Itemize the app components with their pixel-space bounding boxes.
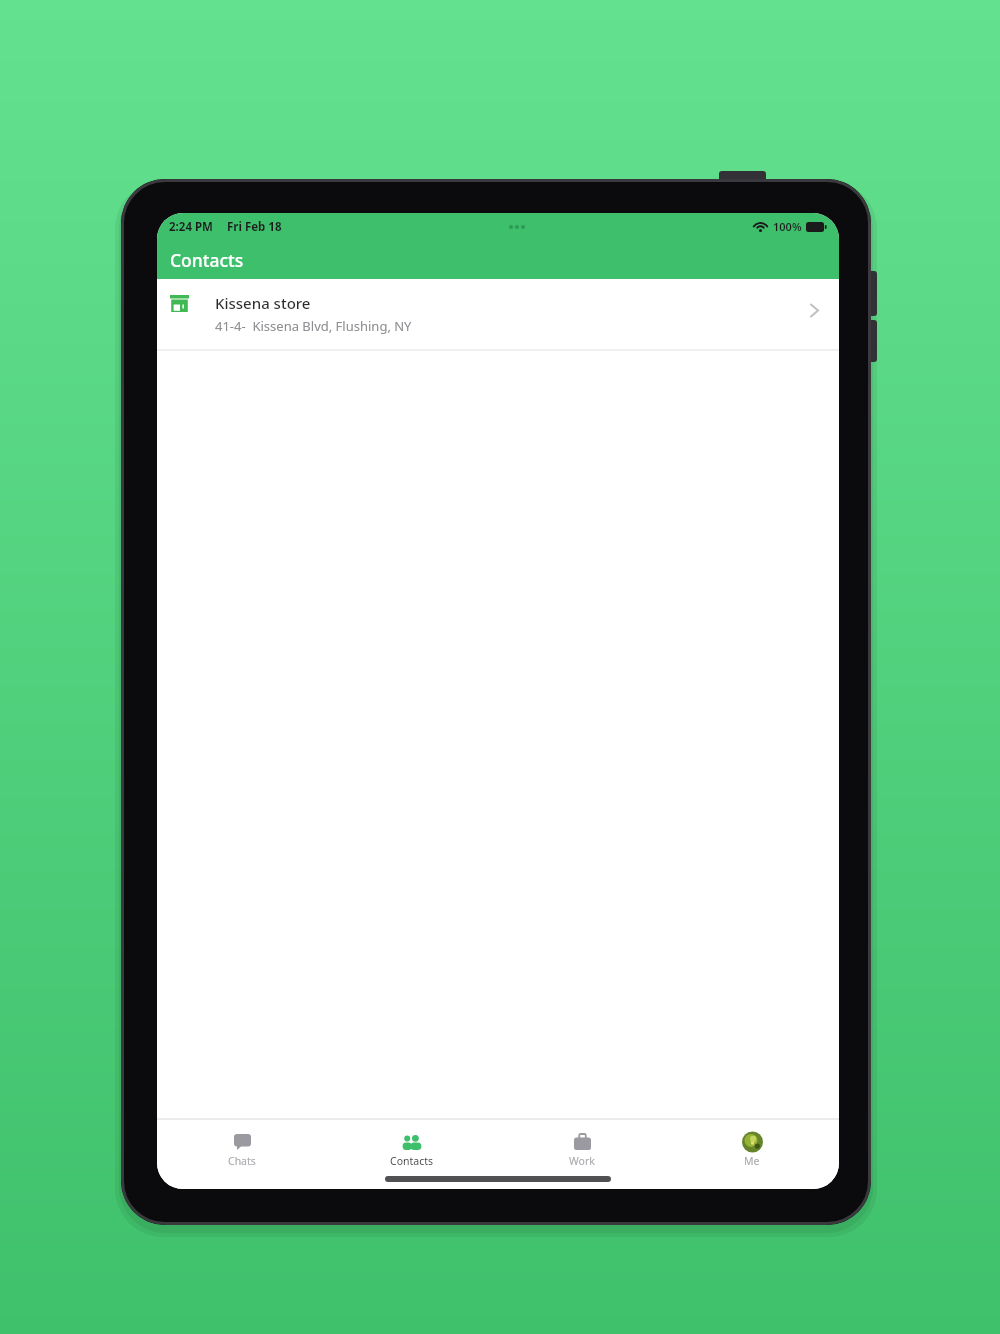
staticText: Me — [744, 1154, 760, 1168]
staticText: 2:24 PM — [169, 219, 213, 235]
staticText: Contacts — [170, 248, 244, 272]
staticText: Kissena store — [215, 293, 311, 313]
staticText: Work — [569, 1154, 595, 1168]
staticText: 41-4- Kissena Blvd, Flushing, NY — [215, 317, 412, 335]
staticText: Fri Feb 18 — [227, 219, 282, 235]
button[interactable]: Contacts — [327, 1120, 497, 1189]
button[interactable]: Me — [667, 1120, 837, 1189]
button[interactable]: Chats — [157, 1120, 327, 1189]
button[interactable]: Work — [497, 1120, 667, 1189]
button[interactable]: Kissena store — [157, 279, 839, 349]
staticText: Chats — [228, 1154, 256, 1168]
staticText: Contacts — [390, 1154, 434, 1168]
staticText: 100% — [773, 219, 802, 234]
